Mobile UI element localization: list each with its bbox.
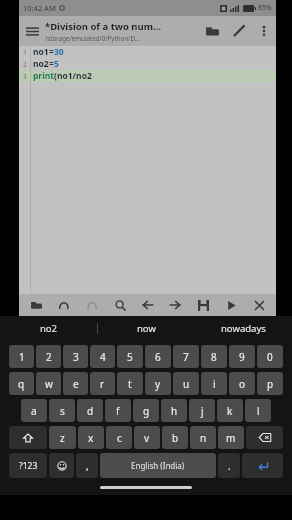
staticText: no2 <box>33 58 49 70</box>
button[interactable]: m <box>218 426 244 449</box>
staticText: b <box>172 431 179 445</box>
button[interactable]: 6 <box>145 345 171 368</box>
button[interactable]: Back <box>137 294 159 316</box>
button[interactable]: g <box>133 399 159 422</box>
button[interactable]: *Division of a two num… <box>45 20 198 42</box>
staticText: (no1/no2 <box>54 70 92 82</box>
button[interactable]: Run <box>220 294 242 316</box>
button[interactable]: n <box>190 426 216 449</box>
staticText: no2 <box>40 322 58 335</box>
staticText: h <box>171 404 178 418</box>
button[interactable]: Open <box>25 294 47 316</box>
button[interactable]: r <box>90 372 115 395</box>
button[interactable]: Edit <box>226 18 252 44</box>
staticText: w <box>45 377 53 391</box>
button[interactable]: e <box>63 372 88 395</box>
staticText: e <box>73 377 79 391</box>
staticText: g <box>143 404 150 418</box>
button[interactable]: 1 <box>9 345 34 368</box>
button[interactable]: a <box>21 399 47 422</box>
button[interactable]: English (India) <box>100 453 216 478</box>
button[interactable]: Open file <box>198 17 226 45</box>
button[interactable]: nowadays <box>195 316 292 341</box>
button[interactable]: y <box>145 372 171 395</box>
button[interactable]: ?123 <box>9 453 47 478</box>
staticText: 4 <box>100 350 106 364</box>
staticText: , <box>86 459 89 473</box>
staticText: /storage/emulated/0/Python/D… <box>45 34 140 42</box>
button[interactable]: Shift <box>9 426 47 449</box>
button[interactable]: q <box>9 372 34 395</box>
button[interactable]: i <box>201 372 227 395</box>
button[interactable]: 8 <box>201 345 227 368</box>
button[interactable]: k <box>217 399 243 422</box>
button[interactable]: b <box>162 426 188 449</box>
button[interactable]: t <box>117 372 143 395</box>
button[interactable]: Close <box>248 294 270 316</box>
button[interactable]: Save <box>192 294 214 316</box>
button[interactable]: 4 <box>90 345 115 368</box>
staticText: 30 <box>54 46 64 58</box>
staticText: 8 <box>211 350 217 364</box>
button[interactable]: no2 <box>0 316 97 341</box>
staticText: z <box>60 431 65 445</box>
staticText: print <box>33 70 54 82</box>
button[interactable]: 5 <box>117 345 143 368</box>
staticText: u <box>183 377 190 391</box>
staticText: p <box>267 377 274 391</box>
button[interactable]: Emoji <box>49 453 74 478</box>
button[interactable]: Forward <box>164 294 186 316</box>
staticText: m <box>226 431 236 445</box>
button[interactable]: More options <box>252 19 276 43</box>
button[interactable]: j <box>189 399 215 422</box>
staticText: 6 <box>155 350 161 364</box>
staticText: = <box>49 58 54 70</box>
button[interactable]: u <box>173 372 199 395</box>
staticText: a <box>31 404 37 418</box>
staticText: no1 <box>33 46 49 58</box>
button[interactable]: 9 <box>229 345 255 368</box>
staticText: r <box>100 377 105 391</box>
staticText: ?123 <box>19 460 38 472</box>
button[interactable]: Backspace <box>246 426 283 449</box>
button[interactable]: 7 <box>173 345 199 368</box>
staticText: 2 <box>46 350 52 364</box>
button[interactable]: d <box>77 399 103 422</box>
staticText: 0 <box>267 350 273 364</box>
button[interactable]: Enter <box>242 453 283 478</box>
button[interactable]: 3 <box>63 345 88 368</box>
button[interactable]: p <box>257 372 283 395</box>
staticText: f <box>116 404 120 418</box>
button[interactable]: now <box>98 316 195 341</box>
button[interactable]: z <box>49 426 76 449</box>
staticText: d <box>87 404 94 418</box>
button[interactable]: o <box>229 372 255 395</box>
button[interactable]: Comma <box>76 453 98 478</box>
staticText: 3 <box>73 350 79 364</box>
button[interactable]: 2 <box>36 345 61 368</box>
button[interactable]: f <box>105 399 131 422</box>
button[interactable]: c <box>106 426 132 449</box>
staticText: t <box>128 377 132 391</box>
button[interactable]: s <box>49 399 75 422</box>
button[interactable]: Period <box>218 453 240 478</box>
staticText: 2 <box>23 60 27 69</box>
staticText: 1 <box>23 48 27 57</box>
staticText: now <box>137 322 156 335</box>
staticText: s <box>60 404 65 418</box>
staticText: l <box>257 404 260 418</box>
button[interactable]: x <box>78 426 104 449</box>
staticText: 7 <box>183 350 189 364</box>
button[interactable]: v <box>134 426 160 449</box>
button[interactable]: l <box>245 399 271 422</box>
button[interactable]: Undo <box>53 294 75 316</box>
staticText: i <box>213 377 216 391</box>
button[interactable]: 0 <box>257 345 283 368</box>
button[interactable]: Search <box>109 294 131 316</box>
button[interactable]: Menu <box>19 18 45 44</box>
staticText: 85% <box>258 3 272 13</box>
button[interactable]: w <box>36 372 61 395</box>
staticText: y <box>155 377 161 391</box>
button[interactable]: Redo <box>81 294 103 316</box>
button[interactable]: h <box>161 399 187 422</box>
